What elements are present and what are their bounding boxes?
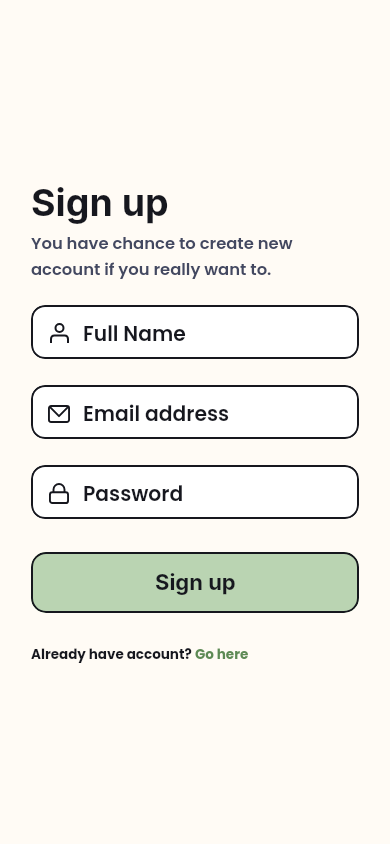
- staticText: Sign up: [31, 180, 169, 225]
- button[interactable]: Email address field: [31, 385, 359, 439]
- staticText: Full Name: [83, 320, 186, 348]
- staticText: Sign up: [155, 569, 236, 596]
- button[interactable]: Sign up: [31, 552, 359, 613]
- staticText: Email address: [83, 400, 230, 428]
- button[interactable]: Full name field: [31, 305, 359, 359]
- staticText: Password: [83, 480, 184, 508]
- button[interactable]: Password field: [31, 465, 359, 519]
- staticText: You have chance to create new account if…: [31, 232, 293, 281]
- button[interactable]: Go here: [195, 645, 249, 664]
- staticText: Already have account?: [31, 645, 195, 664]
